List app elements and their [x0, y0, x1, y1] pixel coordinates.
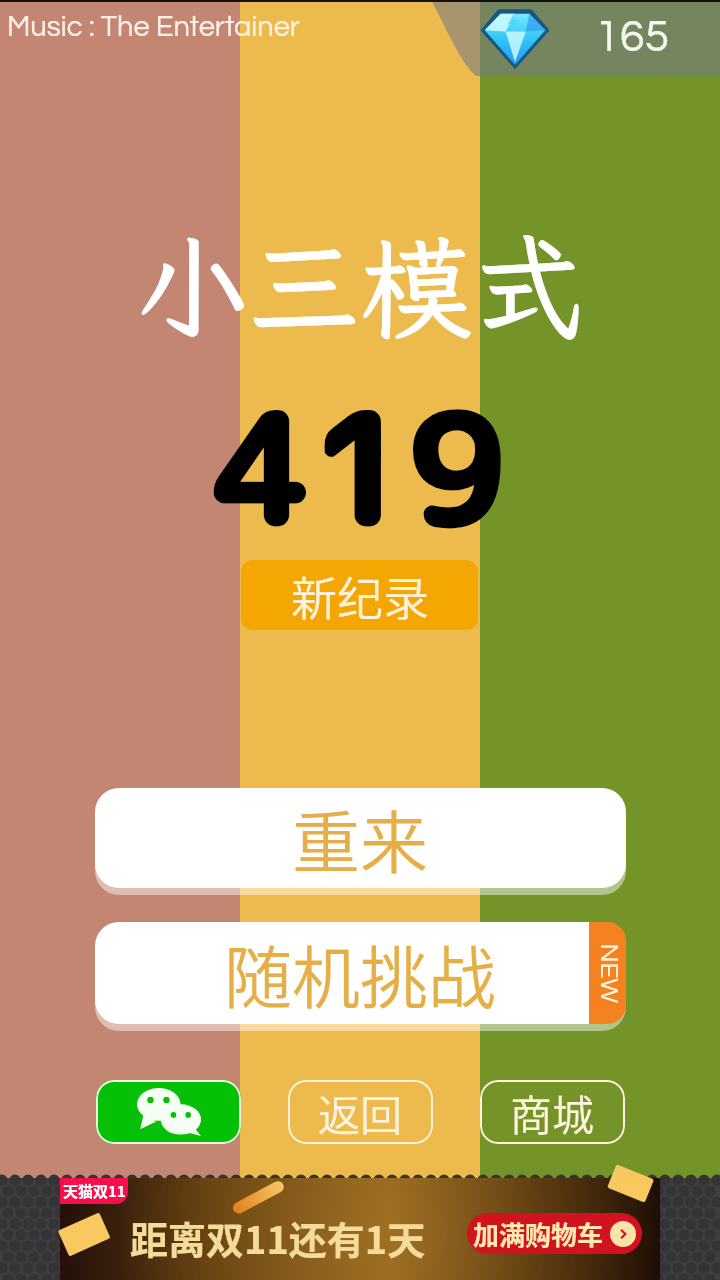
staticText: Music : The Entertainer: [7, 12, 300, 42]
staticText: 165: [595, 14, 670, 60]
button[interactable]: 随机挑战: [95, 922, 626, 1024]
button[interactable]: 加满购物车: [467, 1213, 642, 1254]
staticText: 商城: [510, 1082, 595, 1143]
button[interactable]: 重来: [95, 788, 626, 888]
staticText: NEW: [594, 943, 621, 1003]
button[interactable]: 商城: [480, 1080, 625, 1144]
staticText: 419: [0, 361, 720, 573]
button[interactable]: Share to WeChat: [96, 1080, 241, 1144]
staticText: 距离双11还有1天: [130, 1210, 426, 1265]
staticText: 天猫双11: [63, 1180, 126, 1202]
staticText: 新纪录: [291, 562, 429, 629]
staticText: 随机挑战: [224, 924, 497, 1022]
button[interactable]: 返回: [288, 1080, 433, 1144]
button[interactable]: 新纪录: [241, 560, 478, 630]
staticText: 小三模式: [0, 212, 720, 360]
button[interactable]: 天猫双11: [60, 1178, 660, 1280]
staticText: 返回: [318, 1082, 403, 1143]
staticText: 重来: [292, 789, 429, 887]
other: Gems: [479, 6, 551, 70]
staticText: 加满购物车: [473, 1215, 604, 1253]
other: New: [589, 922, 626, 1024]
